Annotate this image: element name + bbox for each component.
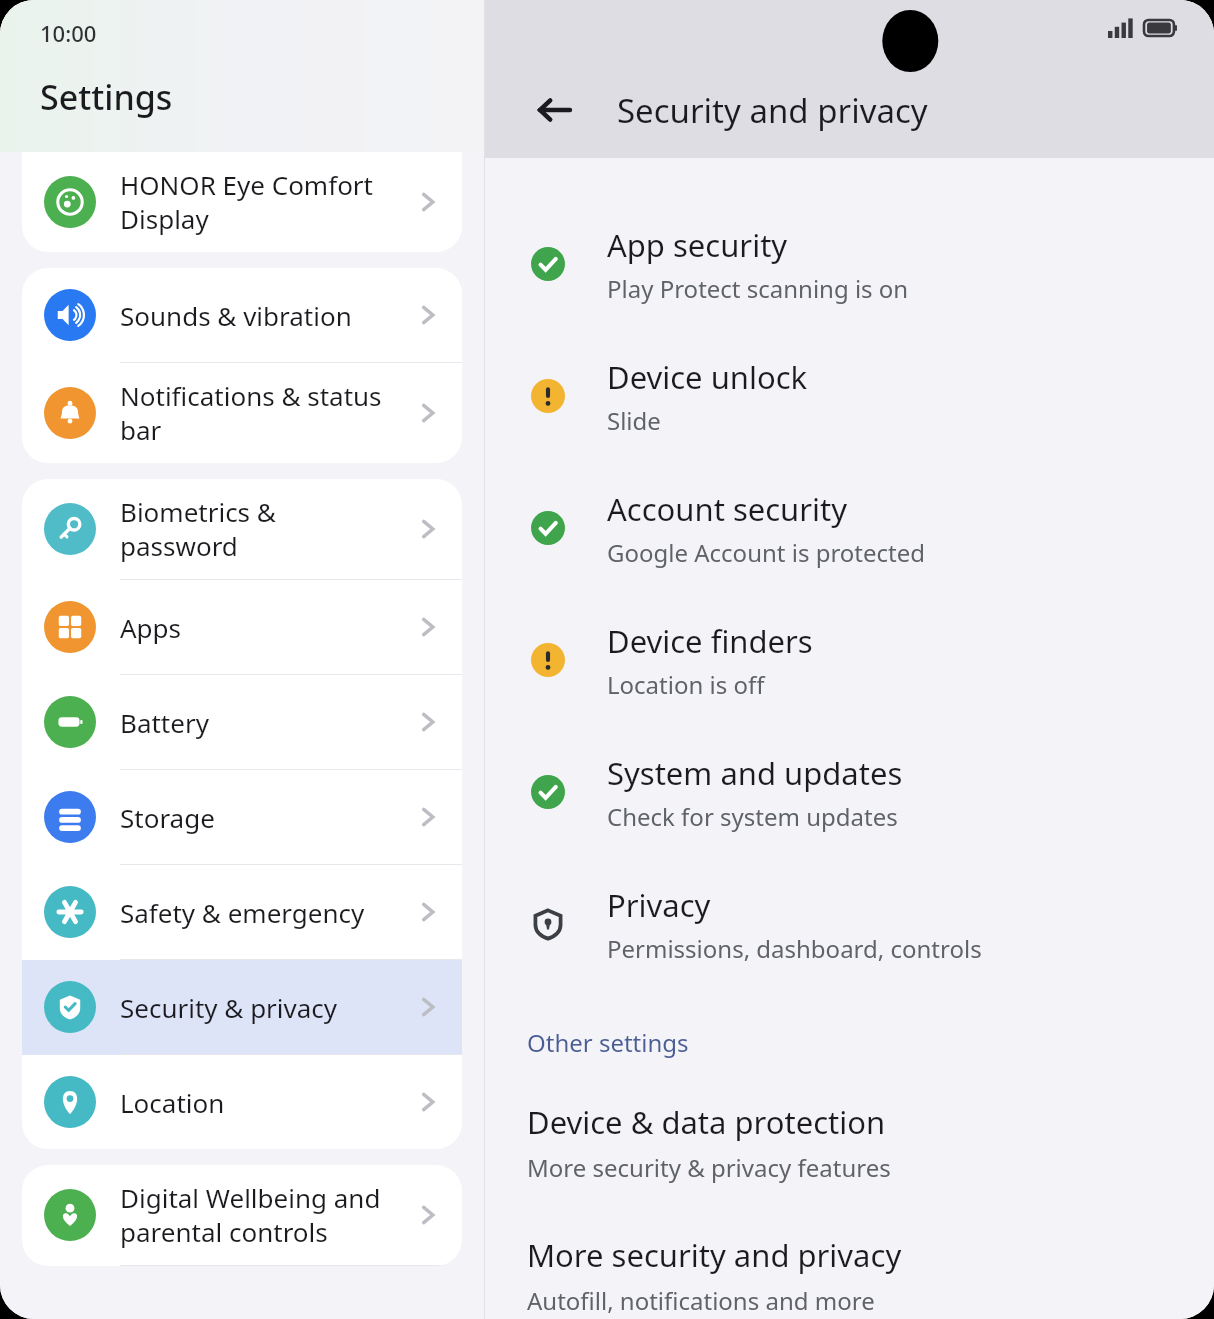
staticText: More security and privacy	[527, 1234, 902, 1276]
button[interactable]: Battery	[22, 675, 462, 770]
button[interactable]: Security & privacy	[22, 960, 462, 1055]
staticText: Device unlock	[607, 356, 808, 398]
staticText: Storage	[120, 800, 416, 835]
button[interactable]: Storage	[22, 770, 462, 865]
staticText: Slide	[607, 404, 661, 437]
staticText: Account security	[607, 488, 848, 530]
staticText: Safety & emergency	[120, 895, 416, 930]
staticText: Autofill, notifications and more	[527, 1284, 875, 1315]
staticText: Permissions, dashboard, controls	[607, 932, 982, 965]
staticText: HONOR Eye Comfort Display	[120, 167, 416, 237]
staticText: Settings	[40, 74, 173, 120]
staticText: System and updates	[607, 752, 903, 794]
button[interactable]: Device unlock	[485, 330, 1214, 462]
staticText: Device & data protection	[527, 1101, 886, 1143]
button[interactable]: HONOR Eye Comfort Display	[22, 152, 462, 252]
button[interactable]: Account security	[485, 462, 1214, 594]
button[interactable]: More security and privacy	[485, 1230, 1214, 1319]
button[interactable]: Apps	[22, 580, 462, 675]
button[interactable]: Notifications & status bar	[22, 363, 462, 463]
staticText: Biometrics & password	[120, 494, 416, 564]
staticText: More security & privacy features	[527, 1151, 891, 1184]
button[interactable]: Digital Wellbeing and parental controls	[22, 1165, 462, 1266]
staticText: Google Account is protected	[607, 536, 926, 569]
button[interactable]: System and updates	[485, 726, 1214, 858]
staticText: Privacy	[607, 884, 711, 926]
staticText: Check for system updates	[607, 800, 898, 833]
button[interactable]: Device & data protection	[485, 1097, 1214, 1188]
button[interactable]: Safety & emergency	[22, 865, 462, 960]
staticText: Location is off	[607, 668, 765, 701]
staticText: Location	[120, 1085, 416, 1120]
button[interactable]: Sounds & vibration	[22, 268, 462, 363]
staticText: Security & privacy	[120, 990, 416, 1025]
button[interactable]: Privacy	[485, 858, 1214, 990]
button[interactable]: Biometrics & password	[22, 479, 462, 580]
button[interactable]: App security	[485, 198, 1214, 330]
staticText: Notifications & status bar	[120, 378, 416, 448]
staticText: Sounds & vibration	[120, 298, 416, 333]
staticText: Digital Wellbeing and parental controls	[120, 1180, 416, 1250]
staticText: 10:00	[40, 18, 97, 48]
staticText: Security and privacy	[617, 88, 928, 133]
staticText: App security	[607, 224, 788, 266]
staticText: Apps	[120, 610, 416, 645]
staticText: Other settings	[527, 1026, 689, 1059]
button[interactable]: Back	[527, 82, 583, 138]
staticText: Battery	[120, 705, 416, 740]
staticText: Play Protect scanning is on	[607, 272, 909, 305]
button[interactable]: Device finders	[485, 594, 1214, 726]
staticText: Device finders	[607, 620, 813, 662]
button[interactable]: Location	[22, 1055, 462, 1149]
